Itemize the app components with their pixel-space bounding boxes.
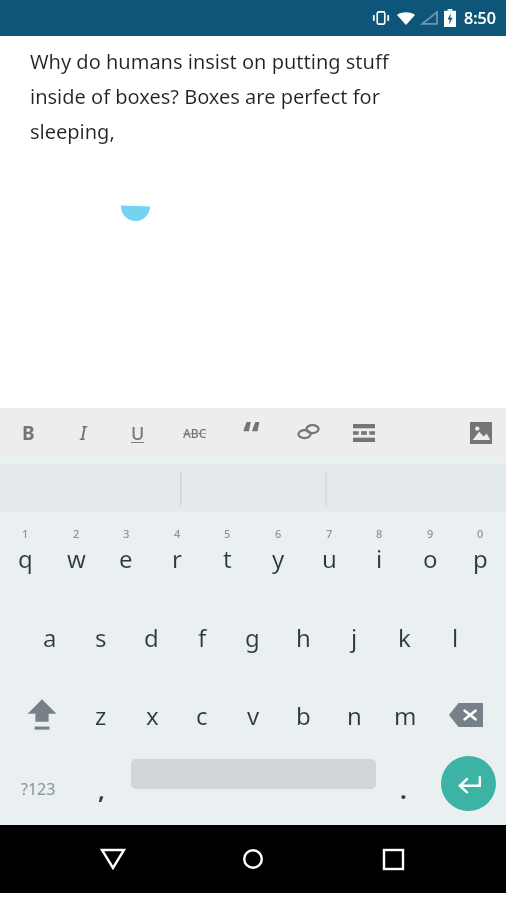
staticText: s: [95, 621, 107, 654]
staticText: 7: [326, 526, 333, 541]
button[interactable]: Back: [87, 833, 139, 885]
staticText: ABC: [183, 425, 207, 441]
button[interactable]: 0: [455, 520, 505, 598]
button[interactable]: h: [278, 598, 328, 676]
staticText: g: [245, 621, 260, 654]
staticText: a: [43, 621, 57, 654]
staticText: z: [95, 699, 107, 732]
button[interactable]: 9: [405, 520, 455, 598]
staticText: u: [322, 542, 337, 575]
button[interactable]: Recent apps: [367, 833, 419, 885]
button[interactable]: More: [339, 408, 389, 458]
button[interactable]: a: [25, 598, 75, 676]
button[interactable]: Italic: [58, 408, 108, 458]
button[interactable]: Underline: [113, 408, 163, 458]
button[interactable]: ?123: [4, 754, 72, 824]
staticText: r: [172, 542, 182, 575]
staticText: t: [223, 542, 232, 575]
staticText: m: [394, 699, 417, 732]
staticText: 2: [73, 526, 80, 541]
staticText: inside of boxes? Boxes are perfect for: [30, 83, 380, 110]
button[interactable]: k: [379, 598, 429, 676]
staticText: .: [400, 773, 407, 806]
staticText: b: [296, 699, 311, 732]
button[interactable]: Link: [283, 408, 333, 458]
staticText: o: [423, 542, 438, 575]
staticText: q: [18, 542, 33, 575]
staticText: e: [119, 542, 133, 575]
button[interactable]: ,: [76, 754, 126, 824]
staticText: I: [80, 420, 87, 446]
button[interactable]: f: [177, 598, 227, 676]
staticText: h: [296, 621, 311, 654]
staticText: 3: [123, 526, 130, 541]
staticText: 8: [376, 526, 383, 541]
staticText: w: [67, 542, 86, 575]
button[interactable]: Home: [227, 833, 279, 885]
staticText: l: [452, 621, 459, 654]
button[interactable]: 5: [202, 520, 252, 598]
button[interactable]: z: [76, 676, 126, 754]
button[interactable]: 8: [354, 520, 404, 598]
button[interactable]: j: [329, 598, 379, 676]
staticText: k: [398, 621, 411, 654]
button[interactable]: b: [278, 676, 328, 754]
button[interactable]: .: [381, 754, 425, 824]
button[interactable]: d: [126, 598, 176, 676]
staticText: v: [247, 699, 260, 732]
button[interactable]: 6: [253, 520, 303, 598]
staticText: x: [146, 699, 159, 732]
button[interactable]: Strikethrough: [170, 408, 220, 458]
staticText: 0: [477, 526, 484, 541]
staticText: f: [198, 621, 207, 654]
staticText: d: [144, 621, 159, 654]
button[interactable]: 2: [51, 520, 101, 598]
staticText: 4: [174, 526, 181, 541]
staticText: sleeping,: [30, 118, 115, 145]
staticText: 6: [275, 526, 282, 541]
button[interactable]: s: [76, 598, 126, 676]
button[interactable]: Bold: [3, 408, 53, 458]
staticText: 1: [22, 526, 29, 541]
staticText: Why do humans insist on putting stuff: [30, 48, 389, 75]
staticText: ?123: [21, 778, 56, 800]
button[interactable]: c: [177, 676, 227, 754]
staticText: “: [243, 408, 260, 458]
staticText: B: [22, 420, 35, 446]
button[interactable]: Why do humans insist on putting stuff: [0, 36, 506, 408]
staticText: 8:50: [464, 7, 496, 29]
staticText: c: [196, 699, 208, 732]
button[interactable]: 4: [152, 520, 202, 598]
staticText: y: [272, 542, 285, 575]
staticText: n: [347, 699, 362, 732]
button[interactable]: l: [430, 598, 480, 676]
button[interactable]: g: [227, 598, 277, 676]
button[interactable]: Insert image: [456, 408, 506, 458]
staticText: j: [351, 621, 358, 654]
staticText: 9: [427, 526, 434, 541]
button[interactable]: 3: [101, 520, 151, 598]
button[interactable]: n: [329, 676, 379, 754]
button[interactable]: Quote: [226, 408, 276, 458]
staticText: U: [131, 421, 145, 446]
staticText: ,: [98, 773, 105, 806]
button[interactable]: Shift: [8, 676, 76, 754]
staticText: 5: [224, 526, 231, 541]
button[interactable]: v: [228, 676, 278, 754]
button[interactable]: x: [127, 676, 177, 754]
button[interactable]: Enter: [441, 756, 496, 811]
button[interactable]: 1: [0, 520, 50, 598]
button[interactable]: Backspace: [432, 676, 500, 754]
staticText: p: [473, 542, 488, 575]
button[interactable]: 7: [304, 520, 354, 598]
staticText: i: [376, 542, 383, 575]
button[interactable]: m: [380, 676, 430, 754]
